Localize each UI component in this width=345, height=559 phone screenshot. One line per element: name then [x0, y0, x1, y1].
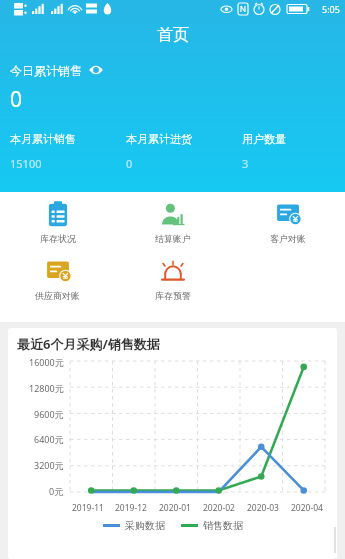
staticText: 销售数据	[203, 519, 243, 532]
button[interactable]: 本月累计销售	[10, 132, 126, 171]
staticText: 2020-02	[203, 502, 235, 514]
staticText: 16000元	[29, 356, 64, 368]
staticText: 0	[126, 156, 133, 171]
staticText: 库存状况	[40, 233, 76, 244]
staticText: 用户数量	[242, 132, 286, 146]
staticText: 0元	[49, 485, 64, 497]
staticText: 2019-12	[115, 502, 147, 514]
staticText: 12800元	[29, 382, 64, 394]
staticText: 结算账户	[155, 233, 191, 244]
button[interactable]: 本月累计进货	[126, 132, 242, 171]
staticText: 6400元	[34, 433, 64, 445]
staticText: 2019-11	[72, 502, 104, 514]
staticText: 9600元	[34, 408, 64, 420]
staticText: 首页	[157, 25, 189, 45]
button[interactable]: 库存状况	[0, 198, 115, 247]
staticText: 15100	[10, 156, 42, 171]
staticText: 2020-03	[247, 502, 279, 514]
button[interactable]: 采购数据	[103, 519, 165, 532]
staticText: 最近6个月采购/销售数据	[17, 335, 160, 353]
staticText: 库存预警	[155, 290, 191, 301]
staticText: 今日累计销售	[10, 63, 82, 78]
button[interactable]: 销售数据	[181, 519, 243, 532]
button[interactable]: 结算账户	[115, 198, 230, 247]
staticText: 本月累计进货	[126, 132, 192, 146]
staticText: 供应商对账	[35, 290, 80, 301]
staticText: 本月累计销售	[10, 132, 76, 146]
staticText: 3	[242, 156, 249, 171]
button[interactable]: 显示或隐藏金额	[88, 62, 104, 78]
button[interactable]: 用户数量	[242, 132, 335, 171]
staticText: 客户对账	[270, 233, 306, 244]
staticText: 2020-01	[159, 502, 191, 514]
staticText: 5:05	[322, 3, 340, 15]
staticText: 采购数据	[125, 519, 165, 532]
button[interactable]: 客户对账	[230, 198, 345, 247]
staticText: 3200元	[34, 459, 64, 471]
staticText: 2020-04	[291, 502, 323, 514]
button[interactable]: 库存预警	[115, 255, 230, 304]
button[interactable]: 供应商对账	[0, 255, 115, 304]
staticText: 0	[10, 85, 23, 114]
